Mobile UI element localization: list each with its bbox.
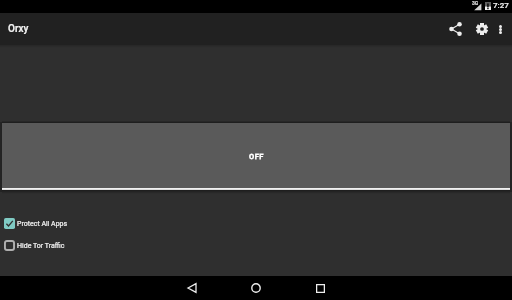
button[interactable]: Back — [170, 276, 214, 300]
staticText: 3G — [472, 0, 479, 6]
button[interactable]: Protect All Apps — [4, 218, 68, 229]
button[interactable]: Recents — [298, 276, 342, 300]
button[interactable]: More options — [489, 13, 511, 45]
button[interactable]: Settings — [469, 13, 495, 45]
staticText: Orxy — [8, 23, 29, 35]
staticText: 7:27 — [493, 1, 509, 10]
staticText: OFF — [249, 152, 264, 161]
button[interactable]: OFF — [2, 123, 510, 188]
button[interactable]: Share — [442, 13, 469, 45]
button[interactable]: Hide Tor Traffic — [4, 240, 65, 251]
staticText: Hide Tor Traffic — [17, 242, 65, 250]
button[interactable]: Home — [234, 276, 278, 300]
staticText: Protect All Apps — [17, 220, 68, 228]
